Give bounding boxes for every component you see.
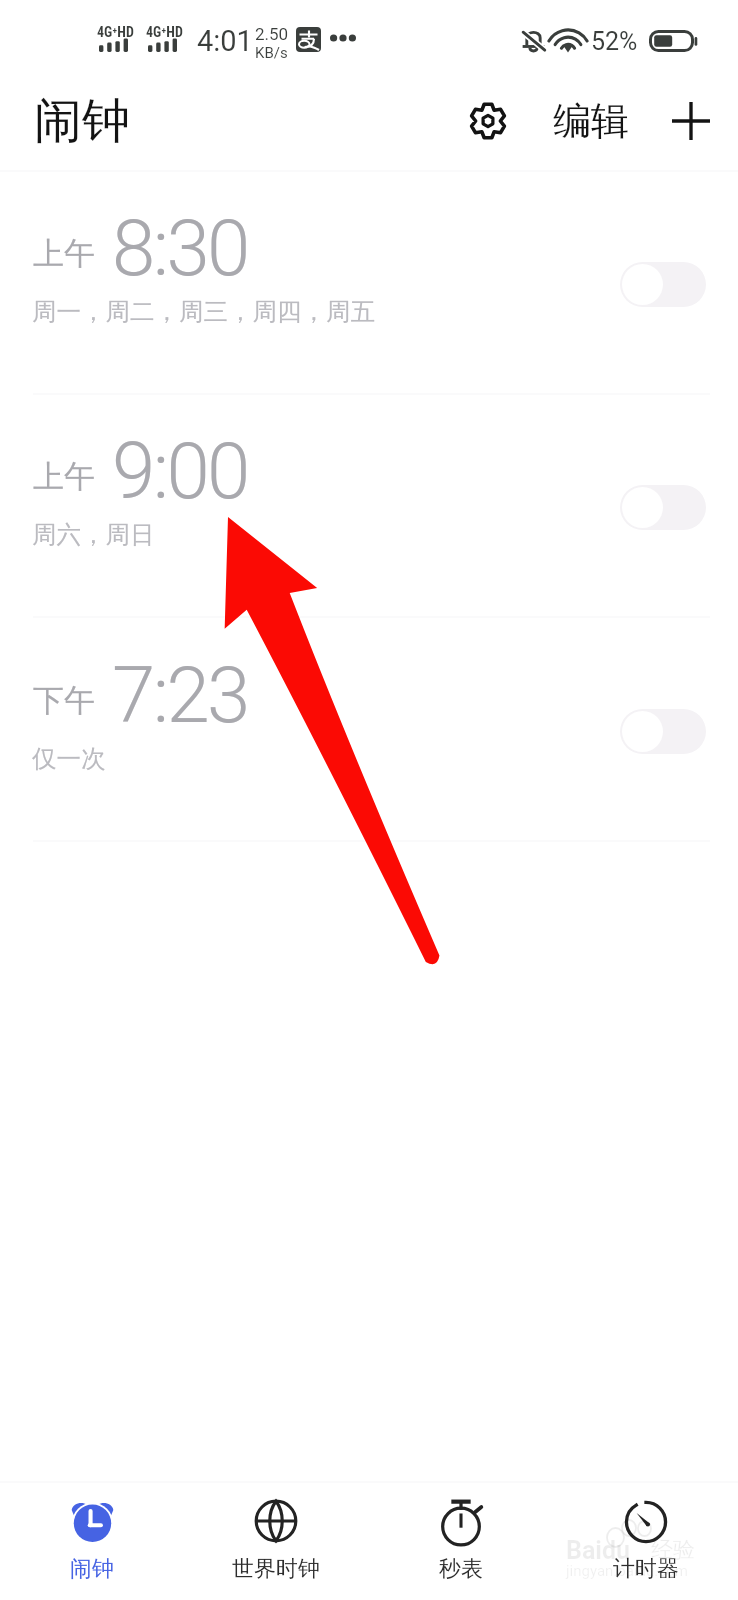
staticText: 闹钟 — [70, 1555, 114, 1583]
button[interactable]: 添加闹钟 — [659, 89, 723, 153]
staticText: Baidu — [566, 1536, 631, 1565]
button[interactable]: 计时器 — [553, 1481, 738, 1600]
staticText: 下午 — [33, 681, 95, 720]
button[interactable]: 编辑 — [534, 89, 648, 153]
staticText: 世界时钟 — [232, 1555, 320, 1583]
button[interactable]: 下午 — [0, 619, 738, 842]
button[interactable]: 闹钟开关 — [620, 262, 706, 307]
staticText: 2.50 — [255, 24, 289, 44]
button[interactable]: 秒表 — [368, 1481, 553, 1600]
staticText: 仅一次 — [32, 743, 106, 774]
staticText: 计时器 — [613, 1555, 679, 1583]
staticText: 周一，周二，周三，周四，周五 — [32, 296, 375, 327]
staticText: 上午 — [33, 457, 95, 496]
staticText: 周六，周日 — [32, 519, 155, 550]
staticText: 4:01 — [197, 24, 253, 58]
staticText: 9:00 — [112, 426, 248, 517]
staticText: KB/s — [255, 44, 288, 62]
button[interactable]: 闹钟开关 — [620, 485, 706, 530]
button[interactable]: 上午 — [0, 172, 738, 395]
button[interactable]: 世界时钟 — [184, 1481, 368, 1600]
staticText: 秒表 — [439, 1555, 483, 1583]
staticText: 8:30 — [112, 203, 248, 294]
staticText: 4G⁺HD — [97, 24, 134, 40]
staticText: 4G⁺HD — [146, 24, 183, 40]
staticText: 52% — [591, 27, 638, 56]
staticText: 闹钟 — [34, 91, 130, 151]
button[interactable]: 上午 — [0, 395, 738, 618]
button[interactable]: 闹钟开关 — [620, 709, 706, 754]
staticText: 7:23 — [112, 650, 248, 741]
staticText: jingyan.baidu.com — [566, 1562, 688, 1580]
staticText: 编辑 — [553, 97, 629, 145]
button[interactable]: 闹钟 — [0, 1481, 184, 1600]
staticText: 经验 — [651, 1536, 695, 1564]
button[interactable]: 设置 — [456, 89, 520, 153]
staticText: 上午 — [33, 234, 95, 273]
